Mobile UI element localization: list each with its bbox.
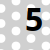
staticText: 5 (25, 0, 43, 40)
